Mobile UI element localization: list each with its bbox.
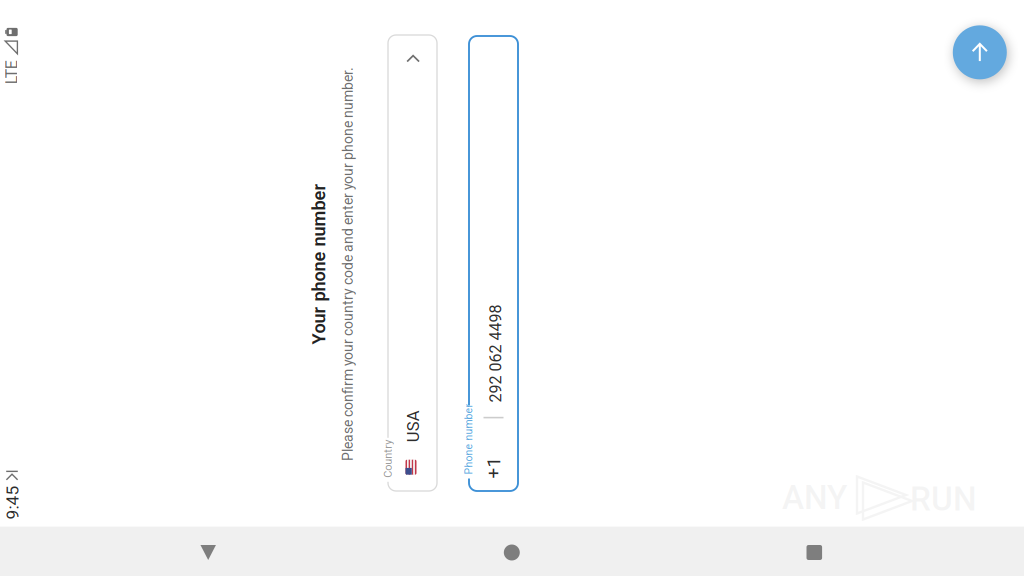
button[interactable]: Back [180,528,236,576]
button[interactable]: Phone number [285,221,740,270]
staticText: Please confirm your country code and ent… [315,92,709,108]
staticText: USA [334,156,366,175]
staticText: Phone number [301,214,372,227]
staticText: Your phone number [431,60,592,82]
staticText: 292 062 4498 [374,238,472,257]
button[interactable]: Home [484,528,540,576]
staticText: +1 [297,235,318,257]
button[interactable]: Country [285,140,741,189]
button[interactable]: Continue [953,24,1007,81]
button[interactable]: Recent apps [786,528,842,576]
staticText: ANY [782,478,847,517]
staticText: RUN [910,479,977,519]
